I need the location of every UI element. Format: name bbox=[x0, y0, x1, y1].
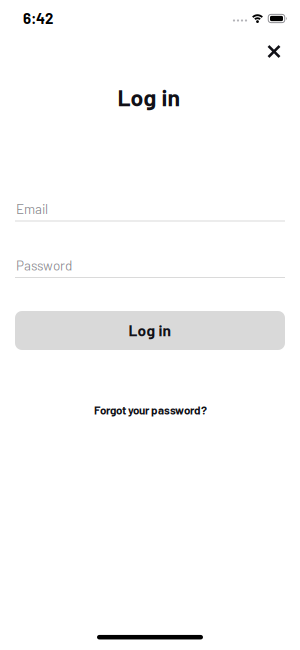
staticText: Log in bbox=[117, 83, 180, 111]
staticText: Forgot your password? bbox=[94, 403, 207, 417]
staticText: Email bbox=[16, 200, 48, 217]
staticText: Password bbox=[16, 257, 72, 273]
staticText: Log in bbox=[128, 321, 170, 339]
staticText: 6:42 bbox=[23, 9, 53, 27]
